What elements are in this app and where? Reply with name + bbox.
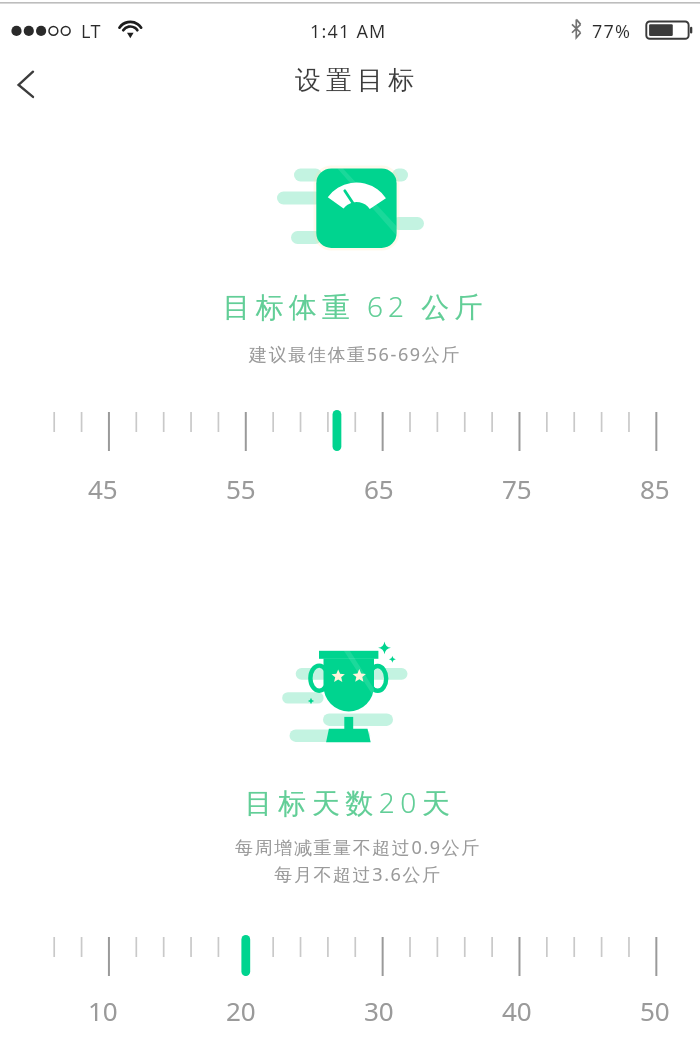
staticText: 30	[364, 993, 394, 1028]
staticText: 建议最佳体重56-69公斤	[5, 342, 700, 367]
staticText: 1:41 AM	[310, 19, 387, 44]
staticText: 55	[226, 471, 256, 506]
staticText: 设置目标	[7, 64, 700, 97]
staticText: 85	[640, 471, 670, 506]
staticText: 77%	[592, 19, 632, 44]
staticText: 目标体重 62 公斤	[5, 287, 700, 325]
staticText: 65	[364, 471, 394, 506]
staticText: 40	[502, 993, 532, 1028]
staticText: 75	[502, 471, 532, 506]
staticText: 50	[640, 993, 670, 1028]
staticText: 45	[88, 471, 118, 506]
staticText: 目标天数20天	[0, 783, 700, 821]
staticText: 20	[226, 993, 256, 1028]
staticText: 10	[88, 993, 118, 1028]
staticText: LT	[81, 19, 102, 44]
staticText: 每周增减重量不超过0.9公斤	[8, 835, 700, 860]
button[interactable]: Back	[2, 57, 54, 109]
staticText: 每月不超过3.6公斤	[8, 862, 700, 887]
